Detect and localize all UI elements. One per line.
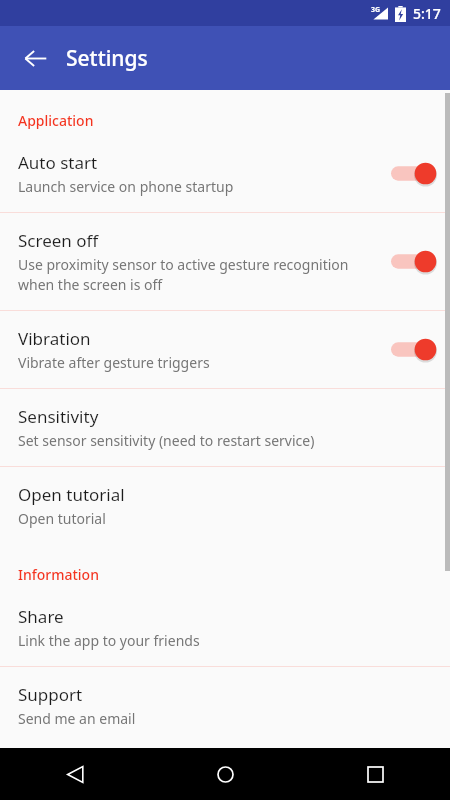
- staticText: Support: [18, 683, 83, 706]
- staticText: Sensitivity: [18, 405, 99, 428]
- button[interactable]: Sensitivity: [0, 389, 450, 466]
- staticText: Link the app to your friends: [18, 631, 200, 650]
- button[interactable]: Share: [0, 589, 450, 666]
- button[interactable]: Back: [11, 34, 59, 82]
- button[interactable]: Vibration: [0, 311, 450, 388]
- button[interactable]: Screen off: [0, 213, 450, 310]
- staticText: Launch service on phone startup: [18, 177, 234, 196]
- staticText: 3G: [371, 5, 381, 15]
- staticText: Open tutorial: [18, 483, 125, 506]
- staticText: 5:17: [413, 4, 441, 23]
- staticText: Set sensor sensitivity (need to restart …: [18, 431, 315, 450]
- staticText: Open tutorial: [18, 509, 106, 528]
- button[interactable]: Home: [150, 748, 300, 800]
- staticText: Send me an email: [18, 709, 136, 728]
- staticText: Use proximity sensor to active gesture r…: [18, 255, 383, 294]
- button[interactable]: Back: [0, 748, 150, 800]
- staticText: Auto start: [18, 151, 98, 174]
- staticText: Screen off: [18, 229, 99, 252]
- button[interactable]: Recent apps: [300, 748, 450, 800]
- button[interactable]: Auto start: [0, 135, 450, 212]
- staticText: Settings: [66, 44, 148, 73]
- staticText: Information: [18, 565, 99, 584]
- staticText: Vibrate after gesture triggers: [18, 353, 210, 372]
- staticText: Application: [18, 111, 94, 130]
- button[interactable]: Open tutorial: [0, 467, 450, 544]
- button[interactable]: Support: [0, 667, 450, 744]
- staticText: Vibration: [18, 327, 91, 350]
- staticText: Share: [18, 605, 64, 628]
